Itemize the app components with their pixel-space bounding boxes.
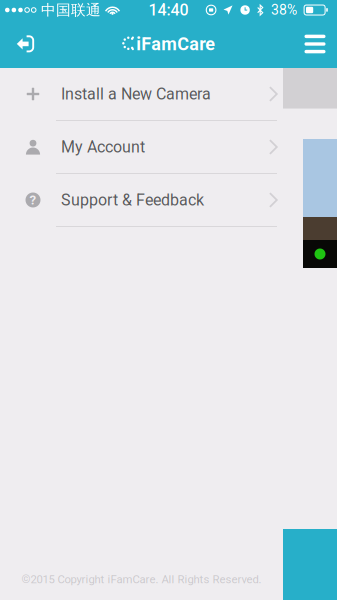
- staticText: Install a New Camera: [61, 85, 211, 103]
- staticText: 38%: [271, 2, 297, 18]
- staticText: ?: [29, 192, 36, 208]
- staticText: ©2015 Copyright iFamCare. All Rights Res…: [21, 573, 261, 586]
- button[interactable]: My Account: [0, 121, 283, 174]
- button[interactable]: Install a New Camera: [0, 68, 283, 121]
- button[interactable]: ?: [0, 174, 283, 227]
- staticText: 中国联通: [41, 1, 101, 19]
- staticText: Support & Feedback: [61, 191, 204, 209]
- staticText: iFamCare: [136, 33, 215, 55]
- button[interactable]: Back: [0, 20, 50, 68]
- button[interactable]: Menu: [293, 20, 337, 68]
- staticText: 14:40: [148, 1, 188, 19]
- staticText: My Account: [61, 138, 145, 156]
